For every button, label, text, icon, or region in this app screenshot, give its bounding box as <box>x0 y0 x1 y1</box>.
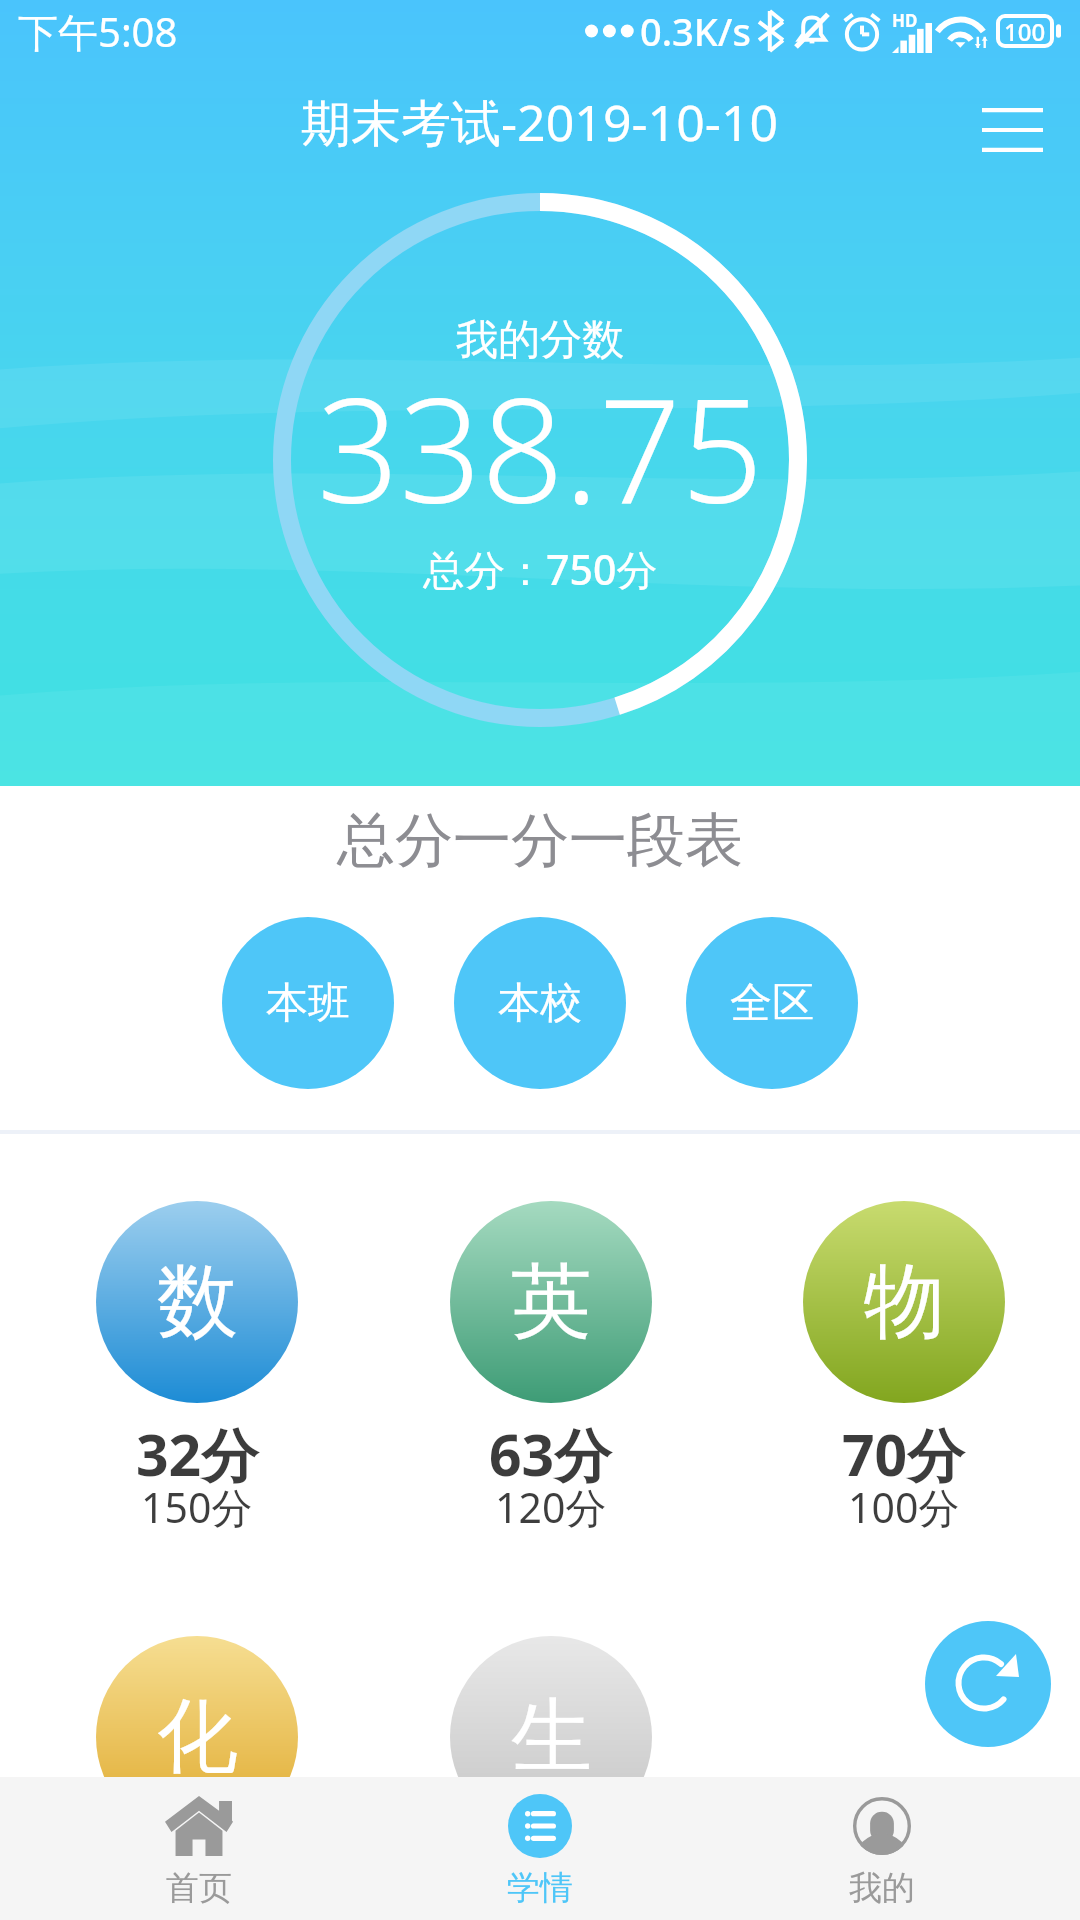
staticText: 总分：750分 <box>423 541 658 597</box>
staticText: 63分 <box>489 1415 612 1493</box>
button[interactable]: 化 <box>20 1636 374 1838</box>
staticText: HD <box>892 9 918 32</box>
button[interactable]: 我的 <box>711 1777 1053 1920</box>
button[interactable]: 本班 <box>222 917 394 1089</box>
button[interactable]: Menu <box>966 84 1058 176</box>
staticText: 物 <box>864 1251 945 1353</box>
button[interactable]: Refresh <box>925 1621 1051 1747</box>
staticText: 英 <box>511 1251 592 1353</box>
staticText: 学情 <box>507 1867 573 1909</box>
button[interactable]: 学情 <box>369 1777 711 1920</box>
staticText: 32分 <box>136 1415 259 1493</box>
staticText: 首页 <box>166 1867 232 1909</box>
button[interactable]: 首页 <box>28 1777 369 1920</box>
staticText: 数 <box>157 1251 238 1353</box>
button[interactable]: 本校 <box>454 917 626 1089</box>
staticText: 本校 <box>498 977 582 1030</box>
staticText: 120分 <box>495 1479 607 1535</box>
staticText: 下午5:08 <box>18 4 178 59</box>
staticText: 100分 <box>848 1479 960 1535</box>
staticText: 全区 <box>730 977 814 1030</box>
staticText: 70分 <box>842 1415 965 1493</box>
button[interactable]: 数 <box>20 1201 374 1549</box>
button[interactable]: 全区 <box>686 917 858 1089</box>
staticText: 100 <box>1004 15 1046 48</box>
button[interactable]: 英 <box>374 1201 727 1549</box>
button[interactable]: 物 <box>727 1201 1080 1549</box>
staticText: 期末考试-2019-10-10 <box>301 88 779 156</box>
staticText: 338.75 <box>317 349 764 545</box>
staticText: 化 <box>157 1686 238 1788</box>
staticText: 我的分数 <box>456 314 624 367</box>
staticText: 150分 <box>141 1479 253 1535</box>
staticText: 总分一分一段表 <box>337 804 743 877</box>
staticText: 生 <box>511 1686 592 1788</box>
staticText: 我的 <box>849 1867 915 1909</box>
staticText: 0.3K/s <box>640 5 751 57</box>
staticText: 本班 <box>266 977 350 1030</box>
button[interactable]: 生 <box>374 1636 727 1838</box>
